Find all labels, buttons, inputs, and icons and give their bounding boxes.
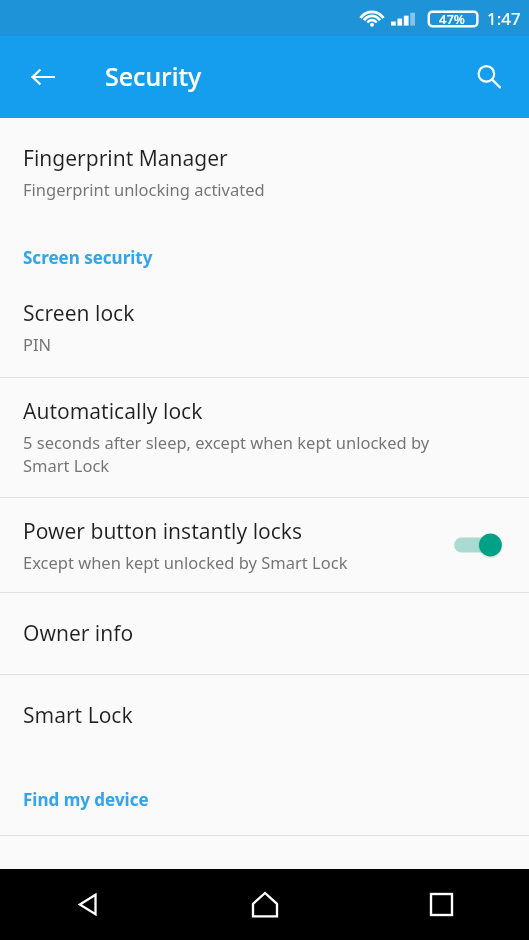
staticText: Smart Lock bbox=[23, 701, 133, 730]
button[interactable]: Screen lock bbox=[0, 289, 529, 377]
button[interactable]: Back bbox=[15, 49, 71, 105]
button[interactable]: Power button instantly locks bbox=[0, 498, 529, 592]
staticText: Automatically lock bbox=[23, 397, 203, 426]
staticText: Power button instantly locks bbox=[23, 517, 303, 546]
button[interactable]: Owner info bbox=[0, 593, 529, 674]
staticText: Security bbox=[105, 59, 202, 93]
staticText: Screen lock bbox=[23, 299, 135, 328]
staticText: Screen security bbox=[23, 246, 153, 269]
staticText: 5 seconds after sleep, except when kept … bbox=[23, 431, 430, 477]
staticText: Find my device bbox=[23, 788, 149, 811]
button[interactable]: Smart Lock bbox=[0, 675, 529, 756]
button[interactable]: Recent apps bbox=[353, 869, 529, 940]
staticText: PIN bbox=[23, 333, 52, 355]
button[interactable]: Automatically lock bbox=[0, 378, 529, 497]
staticText: 1:47 bbox=[487, 7, 521, 30]
staticText: Except when kept unlocked by Smart Lock bbox=[23, 551, 348, 573]
button[interactable]: Back bbox=[0, 869, 177, 940]
staticText: Fingerprint unlocking activated bbox=[23, 178, 265, 200]
button[interactable]: Fingerprint Manager bbox=[0, 118, 529, 222]
staticText: Fingerprint Manager bbox=[23, 144, 228, 173]
staticText: Owner info bbox=[23, 619, 134, 648]
staticText: 47% bbox=[439, 10, 465, 28]
button[interactable]: Search bbox=[461, 49, 517, 105]
button[interactable]: Home bbox=[177, 869, 353, 940]
button[interactable]: Power button instantly locks toggle bbox=[453, 525, 509, 565]
